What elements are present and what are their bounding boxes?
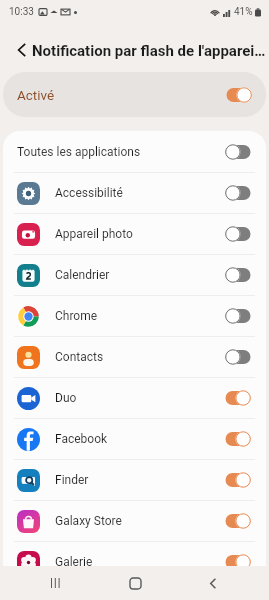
staticText: Finder: [55, 473, 89, 487]
button[interactable]: Recent apps: [34, 566, 78, 600]
button[interactable]: Galaxy Store: [3, 501, 266, 541]
button[interactable]: Duo: [3, 378, 266, 418]
staticText: Facebook: [55, 432, 108, 446]
button[interactable]: Finder: [3, 460, 266, 500]
staticText: Accessibilité: [55, 186, 123, 200]
staticText: 41%: [234, 6, 253, 18]
staticText: Notification par flash de l'apparei…: [32, 42, 266, 60]
staticText: Activé: [17, 87, 55, 103]
staticText: Chrome: [55, 309, 98, 323]
button[interactable]: Back: [7, 35, 37, 65]
staticText: Galerie: [55, 555, 93, 569]
button[interactable]: Accessibilité: [3, 173, 266, 213]
button[interactable]: Calendrier: [3, 255, 266, 295]
staticText: Galaxy Store: [55, 514, 122, 528]
button[interactable]: Activé: [3, 72, 266, 117]
staticText: Duo: [55, 391, 77, 405]
button[interactable]: Facebook: [3, 419, 266, 459]
button[interactable]: Contacts: [3, 337, 266, 377]
button[interactable]: Chrome: [3, 296, 266, 336]
button[interactable]: Appareil photo: [3, 214, 266, 254]
staticText: 10:33: [9, 6, 34, 18]
staticText: Appareil photo: [55, 227, 133, 241]
staticText: Calendrier: [55, 268, 110, 282]
button[interactable]: Home: [113, 566, 157, 600]
staticText: Toutes les applications: [17, 145, 141, 159]
button[interactable]: Toutes les applications: [3, 131, 266, 172]
button[interactable]: Back: [191, 566, 235, 600]
staticText: Contacts: [55, 350, 104, 364]
button[interactable]: Galerie: [3, 542, 266, 582]
